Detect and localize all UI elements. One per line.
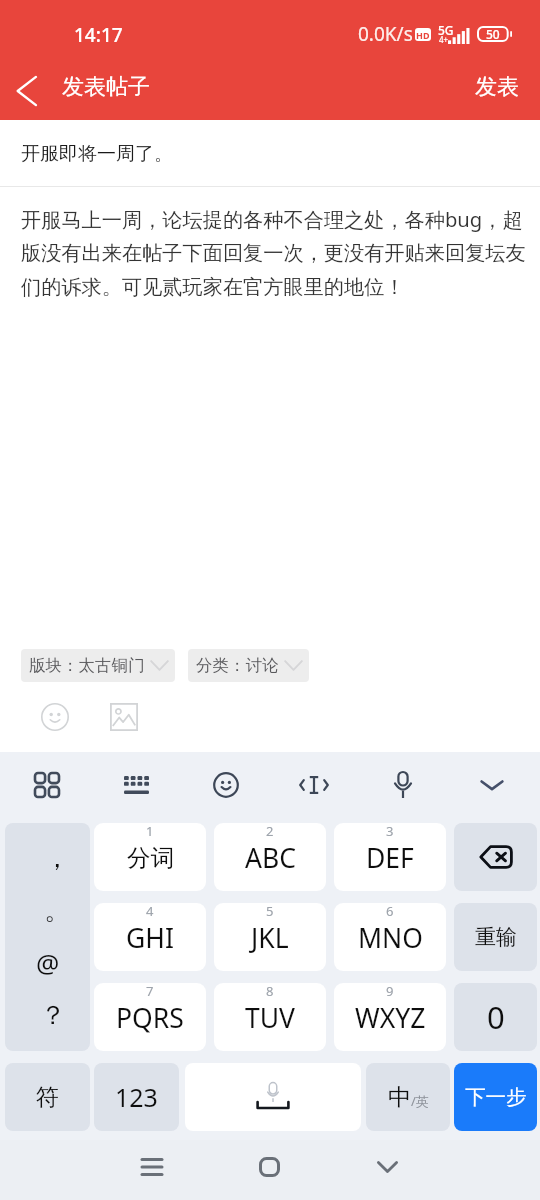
- staticText: 9: [386, 983, 394, 1000]
- button[interactable]: 1: [94, 823, 206, 891]
- staticText: 。: [44, 894, 70, 927]
- button[interactable]: 4: [94, 903, 206, 971]
- button[interactable]: 符: [5, 1063, 90, 1131]
- staticText: 0.0K/s: [358, 21, 413, 47]
- button[interactable]: Backspace: [454, 823, 537, 891]
- staticText: 发表帖子: [62, 73, 150, 101]
- button[interactable]: 7: [94, 983, 206, 1051]
- button[interactable]: 3: [334, 823, 446, 891]
- staticText: 2: [266, 823, 274, 840]
- staticText: 中: [388, 1083, 411, 1112]
- staticText: JKL: [251, 920, 289, 956]
- staticText: /英: [411, 1092, 429, 1110]
- staticText: ，: [44, 842, 70, 875]
- staticText: 6: [386, 903, 394, 920]
- staticText: TUV: [245, 1000, 296, 1036]
- button[interactable]: Voice input: [369, 752, 437, 818]
- staticText: 1: [146, 823, 154, 840]
- staticText: 0: [487, 996, 505, 1038]
- staticText: 发表: [475, 73, 519, 101]
- button[interactable]: Hide keyboard: [351, 1140, 423, 1194]
- button[interactable]: 5: [214, 903, 326, 971]
- button[interactable]: 重输: [454, 903, 537, 971]
- button[interactable]: Hide keyboard: [458, 752, 526, 818]
- staticText: 版块：太古铜门: [29, 655, 145, 676]
- staticText: 下一步: [465, 1084, 527, 1110]
- staticText: 分类：讨论: [196, 655, 279, 676]
- button[interactable]: Next: [454, 1063, 537, 1131]
- staticText: 123: [115, 1080, 158, 1114]
- button[interactable]: 8: [214, 983, 326, 1051]
- staticText: 开服马上一周，论坛提的各种不合理之处，各种bug，超版没有出来在帖子下面回复一次…: [21, 205, 534, 300]
- staticText: 4+: [439, 34, 449, 45]
- staticText: 50: [486, 26, 500, 42]
- button[interactable]: Text cursor: [280, 752, 348, 818]
- button[interactable]: Apps: [13, 752, 81, 818]
- staticText: 7: [146, 983, 154, 1000]
- staticText: 14:17: [74, 22, 123, 48]
- button[interactable]: 123: [94, 1063, 179, 1131]
- staticText: PQRS: [116, 1000, 184, 1036]
- staticText: ？: [40, 999, 66, 1032]
- button[interactable]: Keyboard: [102, 752, 170, 818]
- staticText: 分词: [127, 843, 174, 873]
- button[interactable]: Emoji: [192, 752, 260, 818]
- button[interactable]: Back: [0, 62, 52, 120]
- button[interactable]: 版块：太古铜门: [21, 649, 175, 682]
- staticText: 5: [266, 903, 274, 920]
- staticText: 4: [146, 903, 154, 920]
- staticText: GHI: [126, 920, 174, 956]
- button[interactable]: 6: [334, 903, 446, 971]
- staticText: DEF: [366, 840, 414, 876]
- staticText: 3: [386, 823, 394, 840]
- staticText: HD: [416, 29, 430, 41]
- staticText: 8: [266, 983, 274, 1000]
- staticText: 符: [36, 1083, 59, 1112]
- staticText: MNO: [358, 920, 423, 956]
- button[interactable]: 2: [214, 823, 326, 891]
- button[interactable]: 发表: [454, 61, 540, 113]
- button[interactable]: Switch language: [366, 1063, 450, 1131]
- staticText: WXYZ: [355, 1000, 426, 1036]
- button[interactable]: Emoji: [33, 695, 77, 739]
- staticText: @: [36, 945, 60, 980]
- staticText: 重输: [475, 924, 517, 950]
- button[interactable]: Space: [185, 1063, 361, 1131]
- staticText: 开服即将一周了。: [21, 142, 173, 166]
- button[interactable]: ，: [5, 823, 90, 1051]
- button[interactable]: Image: [102, 695, 146, 739]
- button[interactable]: 分类：讨论: [188, 649, 309, 682]
- button[interactable]: Home: [233, 1140, 305, 1194]
- button[interactable]: Recent apps: [116, 1140, 188, 1194]
- staticText: ABC: [245, 840, 296, 876]
- button[interactable]: 9: [334, 983, 446, 1051]
- button[interactable]: 0: [454, 983, 537, 1051]
- staticText: 5G: [438, 22, 454, 38]
